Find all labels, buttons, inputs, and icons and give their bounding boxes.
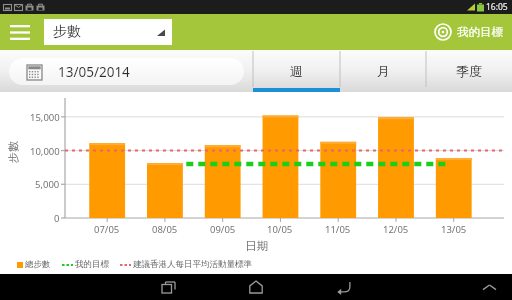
button[interactable]: 我的目標 — [434, 14, 503, 50]
button[interactable]: 季度 — [426, 50, 512, 92]
staticText: 月 — [377, 63, 390, 79]
staticText: 07/05 — [94, 223, 120, 236]
staticText: 5,000 — [35, 178, 60, 191]
button[interactable]: Expand — [466, 274, 512, 300]
button[interactable]: Menu — [0, 14, 40, 50]
staticText: 13/05 — [441, 223, 467, 236]
staticText: 08/05 — [152, 223, 178, 236]
button[interactable]: Recents — [124, 274, 212, 300]
staticText: 11/05 — [325, 223, 351, 236]
staticText: 總步數 — [25, 259, 51, 270]
button[interactable]: Home — [212, 274, 300, 300]
staticText: 13/05/2014 — [58, 63, 130, 81]
button[interactable]: 步數 — [44, 19, 172, 45]
staticText: 我的目標 — [457, 25, 503, 39]
staticText: 我的目標 — [75, 259, 109, 270]
staticText: 季度 — [456, 63, 482, 79]
button[interactable]: 週 — [253, 50, 340, 92]
staticText: 日期 — [245, 239, 268, 253]
staticText: 15,000 — [30, 111, 60, 124]
staticText: 12/05 — [383, 223, 409, 236]
staticText: 步數 — [53, 23, 81, 41]
button[interactable]: 13/05/2014 — [9, 58, 244, 85]
staticText: 步數 — [6, 141, 20, 163]
staticText: 建議香港人每日平均活動量標準 — [133, 259, 252, 270]
staticText: 0 — [54, 212, 60, 225]
button[interactable]: Back — [300, 274, 388, 300]
staticText: 09/05 — [210, 223, 236, 236]
staticText: 16:05 — [486, 1, 508, 13]
staticText: 10,000 — [30, 145, 60, 158]
staticText: 10/05 — [267, 223, 293, 236]
staticText: 週 — [290, 63, 303, 79]
button[interactable]: 月 — [340, 50, 426, 92]
